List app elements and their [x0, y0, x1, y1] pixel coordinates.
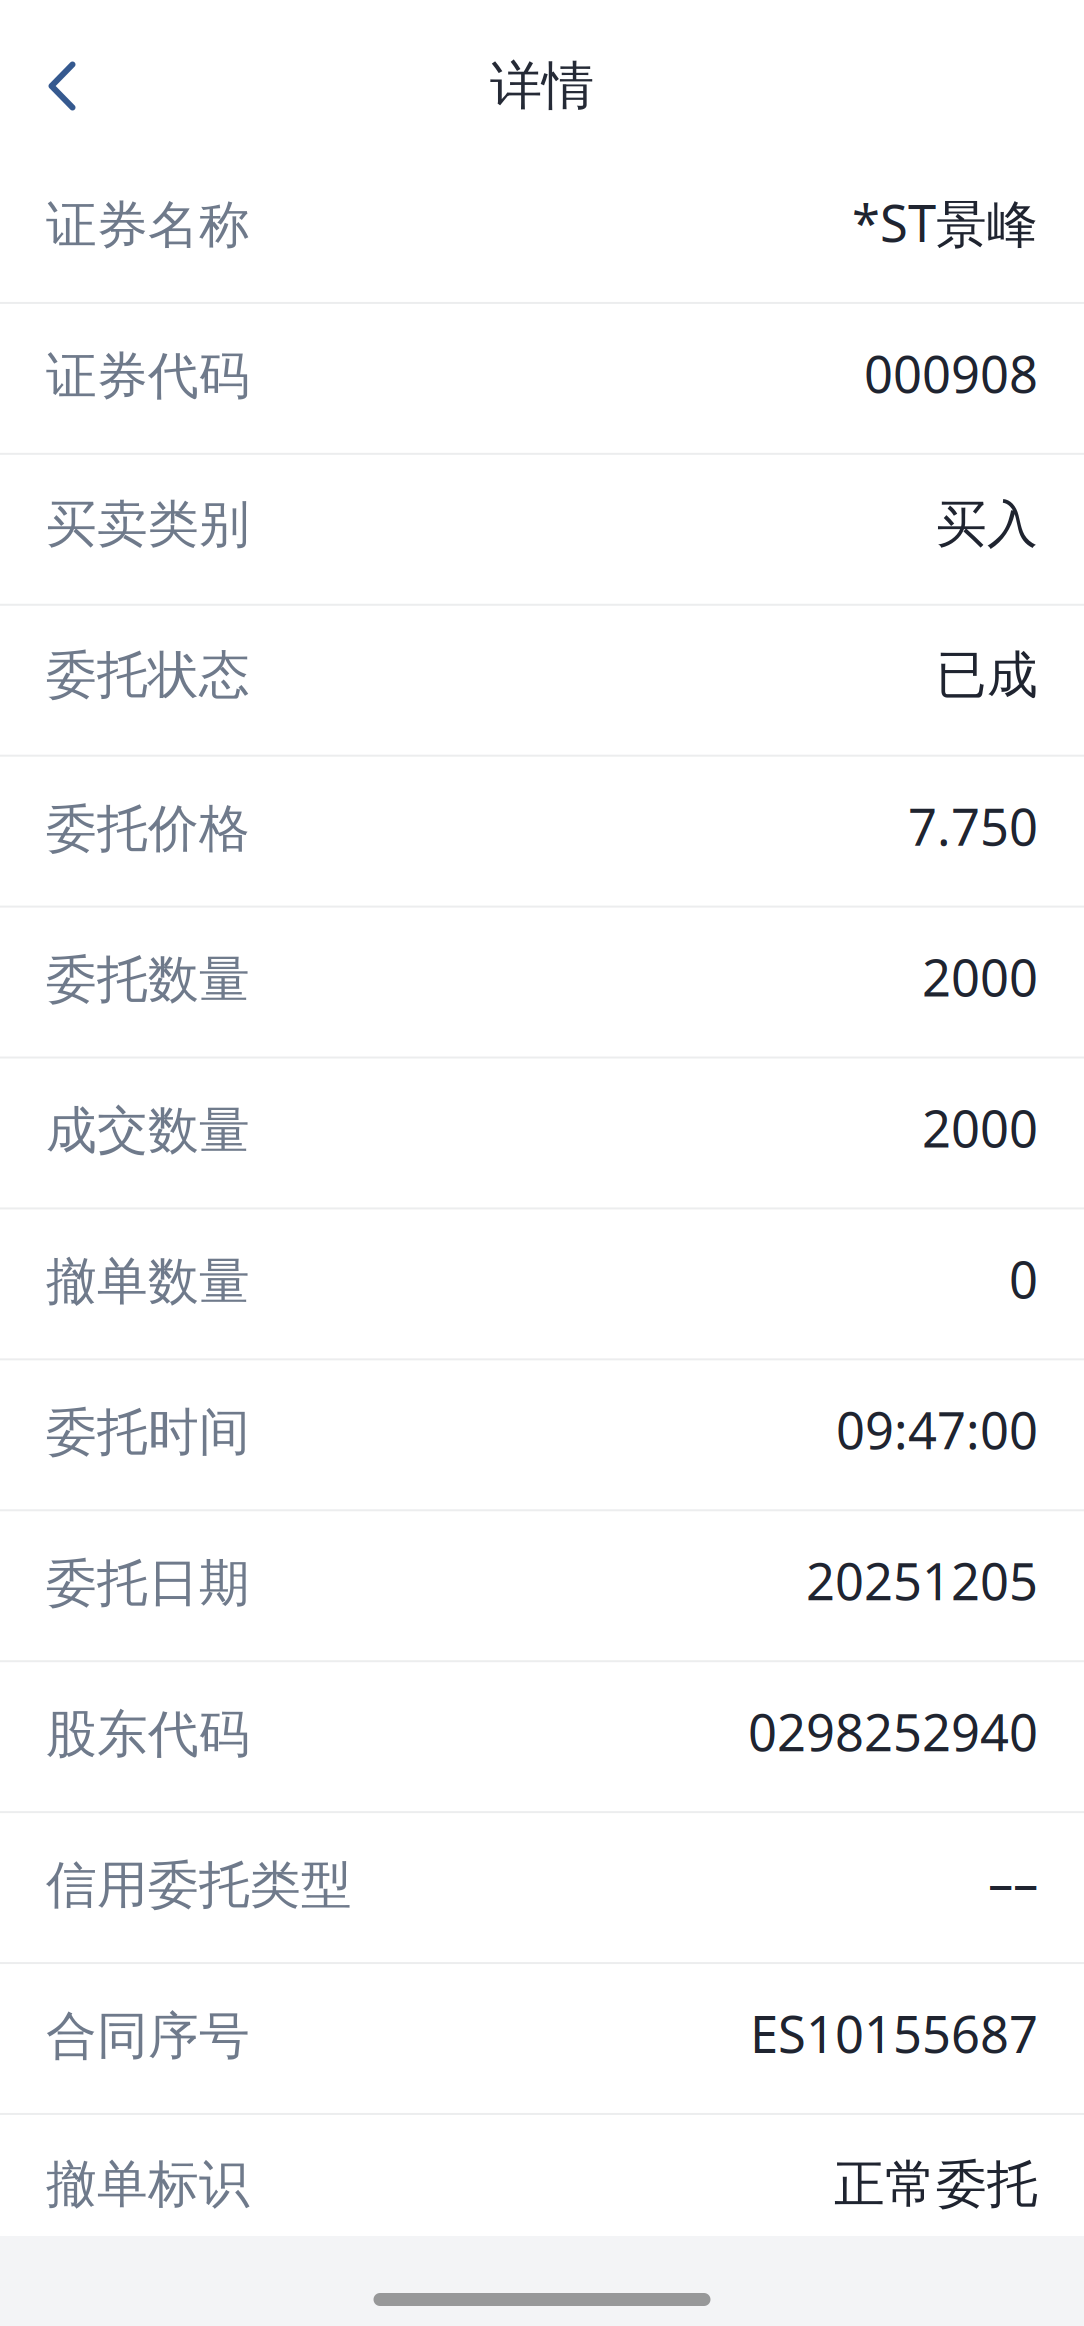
button[interactable]: 证券名称 — [0, 151, 1084, 302]
button[interactable]: 信用委托类型 — [0, 1811, 1084, 1962]
staticText: 撤单数量 — [46, 1250, 250, 1313]
staticText: 2000 — [922, 1094, 1038, 1161]
staticText: *ST景峰 — [852, 189, 1038, 256]
staticText: –– — [988, 1849, 1038, 1916]
button[interactable]: 委托日期 — [0, 1509, 1084, 1660]
staticText: 委托数量 — [46, 949, 250, 1011]
staticText: 已成 — [936, 644, 1038, 706]
staticText: 撤单标识 — [46, 2153, 250, 2215]
staticText: 000908 — [864, 340, 1038, 407]
button[interactable]: 委托状态 — [0, 604, 1084, 755]
button[interactable]: 合同序号 — [0, 1962, 1084, 2113]
staticText: 信用委托类型 — [46, 1854, 352, 1916]
button[interactable]: 股东代码 — [0, 1660, 1084, 1811]
staticText: 09:47:00 — [836, 1396, 1038, 1463]
button[interactable]: Back — [12, 36, 112, 136]
staticText: 0298252940 — [748, 1698, 1038, 1765]
staticText: 7.750 — [908, 792, 1038, 860]
staticText: 委托时间 — [46, 1401, 250, 1464]
staticText: 买卖类别 — [46, 493, 250, 555]
staticText: 正常委托 — [834, 2153, 1038, 2215]
staticText: 买入 — [936, 493, 1038, 555]
staticText: 0 — [1009, 1245, 1038, 1312]
button[interactable]: 撤单标识 — [0, 2113, 1084, 2264]
button[interactable]: 委托时间 — [0, 1358, 1084, 1509]
button[interactable]: 买卖类别 — [0, 453, 1084, 604]
button[interactable]: 委托数量 — [0, 906, 1084, 1056]
staticText: 委托价格 — [46, 798, 250, 860]
button[interactable]: 委托价格 — [0, 755, 1084, 906]
staticText: ES10155687 — [750, 2000, 1038, 2067]
button[interactable]: 证券代码 — [0, 302, 1084, 453]
button[interactable]: 撤单数量 — [0, 1207, 1084, 1358]
staticText: 股东代码 — [46, 1703, 250, 1765]
staticText: 成交数量 — [46, 1099, 250, 1162]
staticText: 委托状态 — [46, 644, 250, 706]
staticText: 详情 — [490, 54, 594, 118]
staticText: 委托日期 — [46, 1552, 250, 1614]
button[interactable]: 成交数量 — [0, 1056, 1084, 1207]
staticText: 20251205 — [806, 1547, 1038, 1614]
staticText: 证券代码 — [46, 345, 250, 407]
staticText: 证券名称 — [46, 194, 250, 256]
staticText: 2000 — [922, 943, 1038, 1011]
staticText: 合同序号 — [46, 2005, 250, 2067]
